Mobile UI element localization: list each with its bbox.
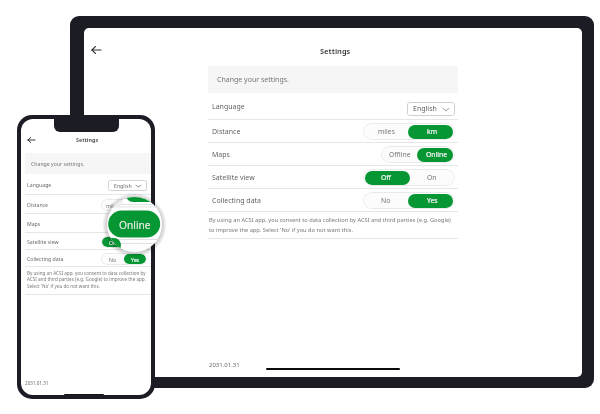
- button[interactable]: Online: [107, 197, 162, 252]
- button[interactable]: Back: [92, 46, 101, 54]
- staticText: English: [114, 182, 132, 189]
- staticText: No: [381, 196, 391, 205]
- staticText: 2031.01.31: [25, 380, 49, 386]
- staticText: Maps: [212, 150, 230, 160]
- staticText: Satellite view: [212, 173, 255, 183]
- button[interactable]: Collecting data: [25, 250, 151, 267]
- button[interactable]: On: [409, 169, 455, 186]
- staticText: Off: [381, 173, 391, 182]
- button[interactable]: Offline: [109, 218, 128, 230]
- staticText: miles: [378, 127, 395, 136]
- staticText: Yes: [427, 196, 438, 205]
- staticText: Maps: [27, 220, 41, 227]
- staticText: km: [132, 202, 140, 209]
- button[interactable]: Satellite view: [25, 233, 151, 250]
- staticText: km: [427, 127, 437, 136]
- staticText: 2031.01.31: [209, 361, 240, 369]
- other: Back: [92, 46, 101, 54]
- staticText: Online: [426, 150, 448, 159]
- button[interactable]: Yes: [124, 253, 147, 265]
- staticText: Language: [212, 102, 245, 112]
- staticText: Language: [27, 181, 52, 188]
- staticText: By using an ACSI app, you consent to dat…: [27, 270, 151, 290]
- button[interactable]: Back: [28, 137, 35, 143]
- staticText: Offline: [389, 150, 411, 159]
- staticText: Settings: [76, 136, 99, 143]
- staticText: Satellite view: [27, 238, 59, 245]
- button[interactable]: Satellite view: [208, 166, 458, 189]
- staticText: On: [427, 173, 437, 182]
- button[interactable]: Off: [363, 169, 409, 186]
- staticText: Online: [129, 221, 146, 228]
- staticText: Settings: [320, 46, 351, 56]
- staticText: Online: [119, 218, 151, 232]
- button[interactable]: Collecting data: [208, 189, 458, 212]
- button[interactable]: Offline: [381, 146, 418, 163]
- staticText: miles: [106, 202, 119, 209]
- staticText: By using an ACSI app, you consent to dat…: [209, 216, 451, 234]
- button[interactable]: miles: [363, 123, 409, 140]
- staticText: Change your settings.: [217, 75, 289, 85]
- button[interactable]: On: [124, 236, 147, 248]
- button[interactable]: km: [409, 123, 455, 140]
- staticText: Offline: [110, 221, 127, 228]
- button[interactable]: Distance: [25, 195, 151, 214]
- button[interactable]: Online: [128, 218, 147, 230]
- button[interactable]: English: [407, 102, 455, 116]
- staticText: Yes: [131, 256, 140, 263]
- staticText: On: [132, 239, 140, 246]
- button[interactable]: Off: [101, 236, 124, 248]
- button[interactable]: Maps: [25, 214, 151, 233]
- button[interactable]: km: [124, 199, 147, 211]
- button[interactable]: No: [101, 253, 124, 265]
- button[interactable]: Yes: [409, 192, 455, 209]
- staticText: Collecting data: [212, 196, 262, 206]
- staticText: Change your settings.: [31, 160, 85, 167]
- button[interactable]: English: [108, 180, 147, 191]
- button[interactable]: No: [363, 192, 409, 209]
- staticText: English: [413, 104, 437, 114]
- other: Back: [28, 137, 35, 143]
- staticText: Off: [109, 239, 117, 246]
- button[interactable]: Maps: [208, 143, 458, 166]
- button[interactable]: Distance: [208, 120, 458, 143]
- staticText: Distance: [27, 201, 49, 208]
- staticText: Distance: [212, 127, 241, 137]
- button[interactable]: miles: [101, 199, 124, 211]
- button[interactable]: Language: [208, 93, 458, 120]
- button[interactable]: Online: [418, 146, 455, 163]
- button[interactable]: Language: [25, 174, 151, 195]
- staticText: Collecting data: [27, 255, 64, 262]
- staticText: No: [109, 256, 117, 263]
